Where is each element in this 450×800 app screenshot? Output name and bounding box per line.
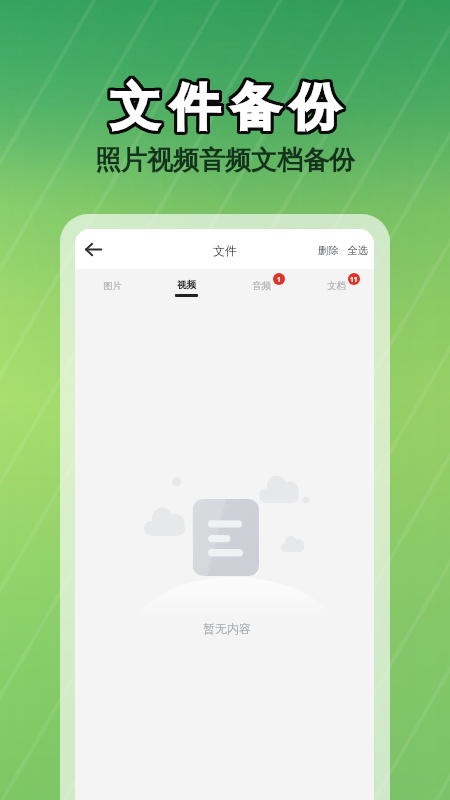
- staticText: 音频: [252, 280, 271, 292]
- staticText: 文件备份: [104, 74, 344, 137]
- staticText: 文件备份: [108, 74, 348, 137]
- staticText: 文件备份: [102, 76, 342, 139]
- staticText: 文件备份: [108, 75, 348, 138]
- button[interactable]: 文档: [299, 269, 374, 303]
- staticText: 文件备份: [103, 75, 343, 138]
- staticText: 1: [277, 275, 281, 284]
- staticText: 文件备份: [105, 74, 345, 137]
- staticText: 文件备份: [108, 76, 348, 139]
- button[interactable]: 全选: [345, 239, 370, 262]
- staticText: 删除: [318, 244, 339, 257]
- staticText: 文件备份: [107, 73, 347, 136]
- staticText: 文件备份: [103, 73, 343, 136]
- staticText: 文件备份: [108, 78, 348, 141]
- staticText: 视频: [177, 279, 196, 291]
- staticText: 文件备份: [102, 75, 342, 138]
- staticText: 文件备份: [102, 78, 342, 141]
- staticText: 文件备份: [106, 79, 346, 142]
- staticText: 文件备份: [107, 76, 347, 139]
- staticText: 文件备份: [102, 74, 342, 137]
- staticText: 文件备份: [108, 77, 348, 140]
- button[interactable]: 删除: [316, 239, 341, 262]
- staticText: 文件备份: [107, 74, 347, 137]
- staticText: 文件备份: [107, 79, 347, 142]
- staticText: 文件备份: [104, 78, 344, 141]
- staticText: 文件备份: [103, 79, 343, 142]
- button[interactable]: 音频: [224, 269, 299, 303]
- staticText: 文件备份: [105, 76, 345, 139]
- button[interactable]: Back: [78, 234, 108, 264]
- staticText: 暂无内容: [203, 621, 251, 636]
- staticText: 文件: [213, 243, 237, 258]
- button[interactable]: 图片: [75, 269, 149, 303]
- staticText: 文件备份: [103, 76, 343, 139]
- staticText: 全选: [347, 244, 368, 257]
- staticText: 文件备份: [105, 79, 345, 142]
- staticText: 文档: [327, 280, 346, 292]
- staticText: 文件备份: [107, 77, 347, 140]
- staticText: 文件备份: [107, 75, 347, 138]
- staticText: 文件备份: [104, 79, 344, 142]
- staticText: 文件备份: [106, 74, 346, 137]
- staticText: 文件备份: [103, 77, 343, 140]
- staticText: 文件备份: [102, 77, 342, 140]
- staticText: 文件备份: [105, 73, 345, 136]
- staticText: 文件备份: [103, 74, 343, 137]
- staticText: 文件备份: [107, 78, 347, 141]
- staticText: 文件备份: [104, 73, 344, 136]
- button[interactable]: 视频: [149, 269, 224, 303]
- staticText: 文件备份: [106, 78, 346, 141]
- staticText: 文件备份: [106, 73, 346, 136]
- staticText: 照片视频音频文档备份: [95, 144, 355, 177]
- staticText: 11: [350, 275, 358, 284]
- staticText: 文件备份: [105, 78, 345, 141]
- staticText: 文件备份: [103, 78, 343, 141]
- staticText: 图片: [103, 280, 122, 292]
